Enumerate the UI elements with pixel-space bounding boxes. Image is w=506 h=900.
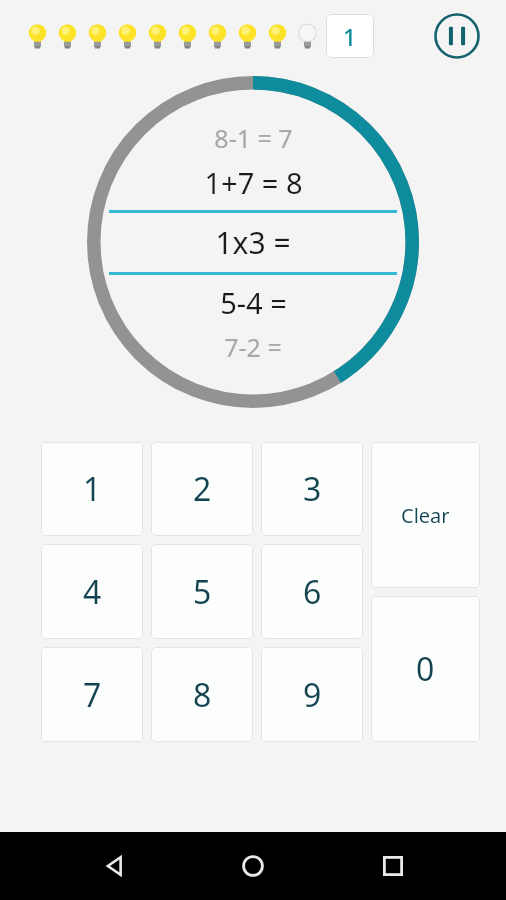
staticText: 2 xyxy=(193,467,212,511)
staticText: 4 xyxy=(83,570,102,614)
button[interactable]: 9 xyxy=(261,647,363,742)
staticText: 1 xyxy=(343,21,357,52)
button[interactable]: 0 xyxy=(371,596,480,742)
staticText: 1+7 = 8 xyxy=(204,163,303,202)
staticText: 0 xyxy=(416,647,435,691)
button[interactable]: 1 xyxy=(41,442,143,536)
staticText: 3 xyxy=(303,467,322,511)
button[interactable]: 5 xyxy=(151,544,253,639)
button[interactable]: Clear xyxy=(371,442,480,588)
button[interactable]: 8 xyxy=(151,647,253,742)
button[interactable]: Pause xyxy=(434,13,480,59)
button[interactable]: 6 xyxy=(261,544,363,639)
staticText: 8 xyxy=(193,673,212,717)
staticText: 5 xyxy=(193,570,212,614)
button[interactable]: Back xyxy=(88,840,140,892)
button[interactable]: 1 xyxy=(326,14,374,58)
staticText: 5-4 = xyxy=(220,283,287,322)
button[interactable]: 4 xyxy=(41,544,143,639)
staticText: Clear xyxy=(401,502,450,529)
button[interactable]: Recents xyxy=(367,840,419,892)
staticText: 7 xyxy=(83,673,102,717)
staticText: 6 xyxy=(303,570,322,614)
staticText: 8-1 = 7 xyxy=(214,121,293,155)
button[interactable]: 2 xyxy=(151,442,253,536)
staticText: 9 xyxy=(303,673,322,717)
staticText: 1 xyxy=(83,467,102,511)
staticText: 7-2 = xyxy=(224,330,282,364)
button[interactable]: 3 xyxy=(261,442,363,536)
staticText: 1x3 = xyxy=(215,222,291,263)
button[interactable]: 7 xyxy=(41,647,143,742)
button[interactable]: Home xyxy=(227,840,279,892)
